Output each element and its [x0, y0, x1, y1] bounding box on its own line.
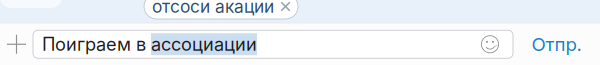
button[interactable]: Add attachment [0, 23, 33, 65]
staticText: Отпр. [531, 33, 581, 56]
staticText: ассоциации [151, 33, 257, 55]
staticText: Поиграем в [42, 33, 151, 55]
button[interactable]: Отпр. [513, 23, 600, 65]
staticText: отсоси акации [152, 0, 274, 17]
button[interactable]: Emoji [477, 31, 503, 57]
